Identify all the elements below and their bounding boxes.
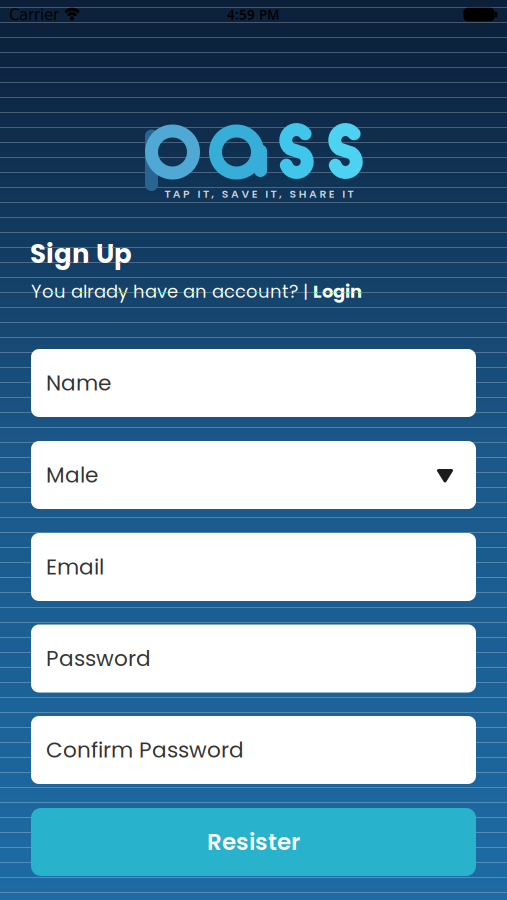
- button[interactable]: Confirm Password: [31, 716, 476, 784]
- staticText: Name: [46, 368, 111, 398]
- staticText: Male: [46, 460, 98, 490]
- button[interactable]: Male: [31, 441, 476, 509]
- button[interactable]: Resister: [31, 808, 476, 876]
- button[interactable]: Email: [31, 533, 476, 601]
- staticText: Sign Up: [30, 236, 132, 272]
- button[interactable]: Login: [313, 279, 362, 304]
- staticText: Carrier: [9, 6, 59, 24]
- button[interactable]: Password: [31, 624, 476, 692]
- staticText: Resister: [207, 826, 300, 858]
- staticText: Password: [46, 643, 151, 674]
- staticText: You alrady have an account? |: [31, 279, 313, 304]
- staticText: Login: [313, 279, 362, 304]
- staticText: Email: [46, 552, 104, 582]
- staticText: Confirm Password: [46, 735, 244, 765]
- staticText: TAP IT, SAVE IT, SHARE IT: [164, 186, 354, 201]
- staticText: 4:59 PM: [227, 5, 280, 24]
- button[interactable]: Name: [31, 349, 476, 417]
